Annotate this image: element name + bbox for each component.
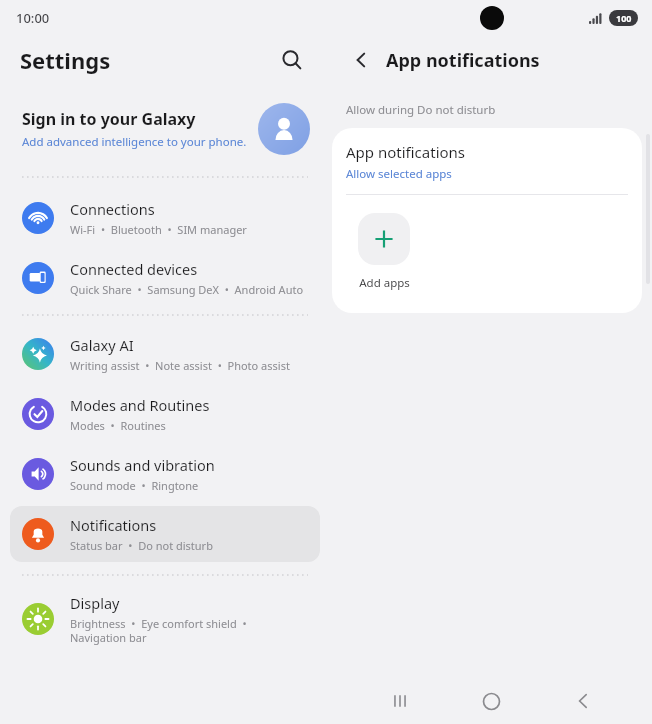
staticText: 100 bbox=[616, 12, 632, 24]
staticText: Brightness • Eye comfort shield • Naviga… bbox=[70, 616, 306, 645]
staticText: Sound mode • Ringtone bbox=[70, 478, 199, 493]
staticText: Galaxy AI bbox=[70, 335, 134, 355]
button[interactable]: Display bbox=[10, 586, 320, 652]
button[interactable]: Galaxy AI bbox=[10, 326, 320, 382]
staticText: Wi-Fi • Bluetooth • SIM manager bbox=[70, 222, 247, 237]
staticText: Quick Share • Samsung DeX • Android Auto bbox=[70, 282, 304, 297]
staticText: Add apps bbox=[359, 275, 410, 291]
staticText: Writing assist • Note assist • Photo ass… bbox=[70, 358, 290, 373]
staticText: Settings bbox=[20, 45, 111, 75]
staticText: App notifications bbox=[346, 142, 466, 162]
staticText: Sign in to your Galaxy bbox=[22, 108, 196, 130]
staticText: 10:00 bbox=[16, 9, 50, 27]
button[interactable]: Connections bbox=[10, 190, 320, 246]
button[interactable]: Sign in to your Galaxy bbox=[22, 98, 310, 160]
button[interactable]: App notifications bbox=[332, 128, 642, 194]
staticText: Connected devices bbox=[70, 259, 198, 279]
staticText: Connections bbox=[70, 199, 155, 219]
button[interactable]: Search bbox=[274, 42, 310, 78]
button[interactable]: Back bbox=[344, 43, 378, 77]
staticText: Status bar • Do not disturb bbox=[70, 538, 213, 553]
staticText: Sounds and vibration bbox=[70, 455, 215, 475]
staticText: Modes and Routines bbox=[70, 395, 210, 415]
button[interactable]: Sounds and vibration bbox=[10, 446, 320, 502]
button[interactable]: Back bbox=[561, 679, 605, 723]
button[interactable]: Recents bbox=[378, 679, 422, 723]
staticText: Allow selected apps bbox=[346, 166, 452, 182]
button[interactable]: Modes and Routines bbox=[10, 386, 320, 442]
staticText: Display bbox=[70, 593, 120, 613]
button[interactable]: Connected devices bbox=[10, 250, 320, 306]
button[interactable]: Home bbox=[469, 679, 513, 723]
staticText: App notifications bbox=[386, 48, 540, 73]
staticText: Notifications bbox=[70, 515, 157, 535]
button[interactable]: Notifications bbox=[10, 506, 320, 562]
staticText: Add advanced intelligence to your phone. bbox=[22, 134, 247, 150]
button[interactable]: Add apps bbox=[358, 213, 410, 291]
staticText: Allow during Do not disturb bbox=[346, 102, 496, 118]
staticText: Modes • Routines bbox=[70, 418, 166, 433]
